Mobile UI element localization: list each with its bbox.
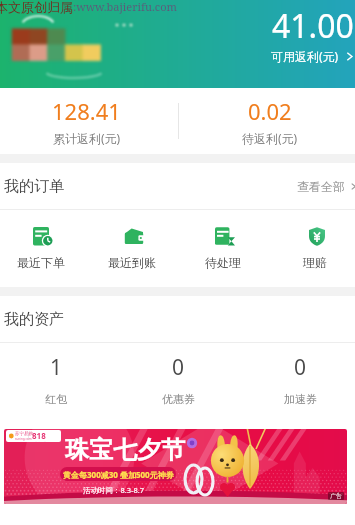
button[interactable]: 0.02 [178,88,355,154]
button[interactable]: 待处理 [177,210,269,287]
staticText: 0 [294,353,307,382]
staticText: 加速券 [284,392,317,406]
staticText: 最近下单 [17,255,65,270]
staticText: 查看全部 [297,179,345,194]
button[interactable]: 理赔 [269,210,355,287]
staticText: 本文原创归属 [0,0,73,15]
staticText: 可用返利(元) [271,48,339,64]
staticText: 珠宝七夕节 [65,435,185,465]
button[interactable]: 最近下单 [0,210,86,287]
staticText: 累计返利(元) [53,130,121,146]
staticText: 黄金每300减30 叠加500元神券 [63,469,174,480]
staticText: 0.02 [248,96,292,126]
staticText: 41.00 [272,4,354,48]
staticText: 我的资产 [4,310,64,329]
staticText: 128.41 [52,96,121,126]
staticText: 1 [50,353,63,382]
button[interactable]: 可用返利(元) [271,48,355,64]
button[interactable]: 最近到账 [86,210,177,287]
staticText: 广告 [330,492,342,500]
staticText: 818 [32,430,46,441]
staticText: 理赔 [303,255,327,270]
staticText: 发烧购物节 [32,441,46,442]
staticText: 最近到账 [108,255,156,270]
staticText: 优惠券 [162,392,195,406]
staticText: 红包 [45,392,67,406]
staticText: :www.bajierifu.com [73,0,177,14]
staticText: 我的订单 [4,177,64,196]
staticText: 苏宁易购 [15,431,33,437]
button[interactable]: 0 [239,343,355,419]
button[interactable]: 查看全部 [297,179,355,194]
button[interactable]: 1 [0,343,117,419]
button[interactable]: 0 [117,343,239,419]
staticText: suning.com [15,437,32,441]
staticText: 待处理 [205,255,241,270]
staticText: 活动时间：8.3-8.7 [83,485,145,495]
staticText: 0 [172,353,185,382]
button[interactable]: 128.41 [0,88,178,154]
button[interactable]: 珠宝七夕节 广告 [4,429,347,504]
staticText: 待返利(元) [242,130,298,146]
